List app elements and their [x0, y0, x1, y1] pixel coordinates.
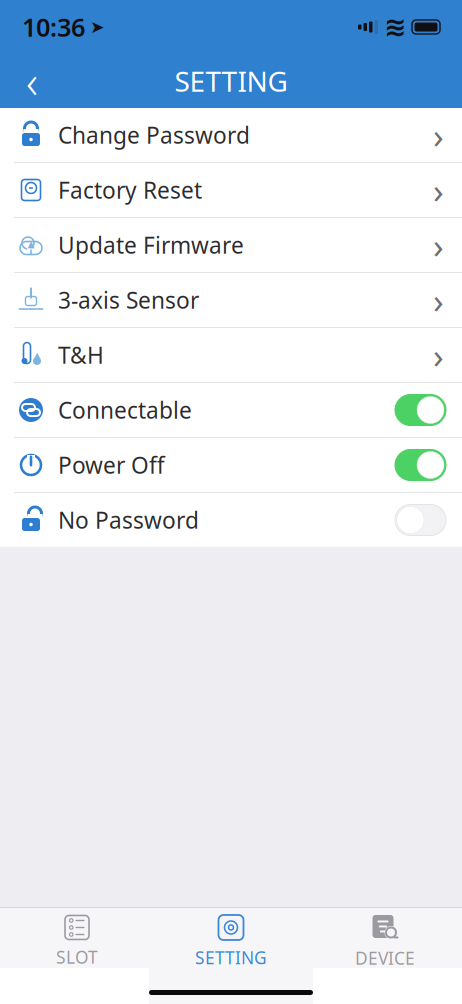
button[interactable]: Power Off	[0, 438, 462, 493]
staticText: 3-axis Sensor	[58, 285, 199, 315]
staticText: Connectable	[58, 395, 192, 425]
staticText: SETTING	[174, 62, 287, 100]
staticText: ›	[433, 277, 444, 323]
button[interactable]: No Password	[0, 493, 462, 547]
staticText: 10:36	[22, 10, 85, 44]
staticText: ›	[433, 222, 444, 268]
staticText: Factory Reset	[58, 175, 202, 205]
staticText: Power Off	[58, 450, 165, 480]
button[interactable]: SETTING	[154, 907, 308, 969]
button[interactable]: Change Password	[0, 108, 462, 163]
button[interactable]: Connectable	[0, 383, 462, 438]
staticText: ▲	[27, 239, 34, 249]
button[interactable]: DEVICE	[308, 906, 462, 969]
staticText: ›	[433, 112, 444, 158]
staticText: T&H	[58, 340, 104, 370]
staticText: ▲	[34, 350, 40, 360]
button[interactable]: ▲	[0, 328, 462, 383]
staticText: No Password	[58, 505, 199, 535]
staticText: Update Firmware	[58, 230, 244, 260]
staticText: Change Password	[58, 120, 250, 150]
staticText: DEVICE	[355, 946, 415, 969]
staticText: ‹	[26, 51, 38, 111]
staticText: ›	[433, 167, 444, 213]
button[interactable]: 3-axis Sensor	[0, 273, 462, 328]
staticText: SLOT	[56, 945, 98, 968]
staticText: ≋	[384, 12, 406, 42]
staticText: SETTING	[195, 946, 267, 969]
staticText: ›	[433, 332, 444, 378]
button[interactable]: SLOT	[0, 907, 154, 968]
button[interactable]: ▲	[0, 218, 462, 273]
button[interactable]: Factory Reset	[0, 163, 462, 218]
staticText: ➤	[90, 17, 105, 37]
button[interactable]: Back	[6, 58, 58, 104]
